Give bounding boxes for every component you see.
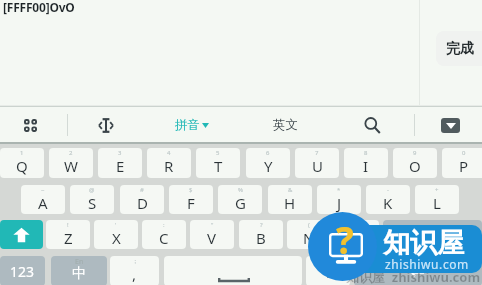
button[interactable]: 9 xyxy=(393,148,437,178)
staticText: + xyxy=(435,186,439,194)
staticText: 0 xyxy=(462,149,466,157)
staticText: 3 xyxy=(118,149,122,157)
button[interactable]: 3 xyxy=(98,148,142,178)
button[interactable]: ~ xyxy=(21,185,65,214)
staticText: 中 xyxy=(72,265,86,283)
staticText: 知识屋 xyxy=(383,226,464,260)
staticText: & xyxy=(288,186,293,194)
button[interactable]: $ xyxy=(169,185,213,214)
button[interactable]: 7 xyxy=(295,148,339,178)
button[interactable]: ? xyxy=(239,220,283,249)
staticText: 1 xyxy=(20,149,24,157)
button[interactable]: 4 xyxy=(147,148,191,178)
button[interactable]: ( xyxy=(287,220,331,249)
button[interactable]: ； xyxy=(110,256,159,285)
button[interactable]: ! xyxy=(46,220,90,249)
staticText: H xyxy=(284,193,296,213)
staticText: " xyxy=(211,221,214,229)
staticText: 7 xyxy=(315,149,319,157)
staticText: N xyxy=(303,228,315,248)
staticText: 5 xyxy=(216,149,220,157)
staticText: ? xyxy=(336,214,354,264)
staticText: X xyxy=(112,228,121,248)
staticText: : xyxy=(163,221,165,229)
button[interactable]: + xyxy=(415,185,459,214)
button[interactable]: Enter xyxy=(354,256,482,285)
staticText: % xyxy=(238,186,243,194)
staticText: 9 xyxy=(413,149,417,157)
staticText: F xyxy=(187,193,195,213)
button[interactable]: 2 xyxy=(49,148,93,178)
button[interactable]: 拼音 xyxy=(150,108,234,142)
staticText: Y xyxy=(264,156,273,176)
staticText: ? xyxy=(260,221,263,229)
staticText: ! xyxy=(67,221,69,229)
staticText: * xyxy=(337,186,341,194)
staticText: O xyxy=(409,156,421,176)
staticText: # xyxy=(140,186,144,194)
button[interactable]: Search xyxy=(336,108,408,142)
button[interactable]: Backspace xyxy=(383,220,482,249)
staticText: 英文 xyxy=(273,117,298,133)
button[interactable]: En xyxy=(51,256,107,285)
staticText: T xyxy=(214,156,223,176)
staticText: D xyxy=(137,193,148,213)
button[interactable]: Symbol panel xyxy=(0,108,60,142)
staticText: 4 xyxy=(167,149,171,157)
staticText: C xyxy=(159,228,169,248)
button[interactable]: - xyxy=(366,185,410,214)
staticText: ； xyxy=(132,257,138,265)
staticText: R xyxy=(164,156,174,176)
staticText: K xyxy=(383,193,393,213)
button[interactable]: : xyxy=(142,220,186,249)
staticText: V xyxy=(207,228,217,248)
button[interactable]: 英文 xyxy=(243,108,328,142)
button[interactable]: & xyxy=(268,185,312,214)
button[interactable]: Shift xyxy=(0,220,43,249)
staticText: ~ xyxy=(41,186,45,194)
staticText: M xyxy=(350,228,364,248)
staticText: 123 xyxy=(10,262,35,281)
button[interactable]: Move cursor xyxy=(68,108,144,142)
staticText: - xyxy=(387,186,389,194)
button[interactable]: ' xyxy=(94,220,138,249)
button[interactable]: 1 xyxy=(0,148,44,178)
staticText: G xyxy=(235,193,246,213)
button[interactable]: @ xyxy=(70,185,114,214)
staticText: 拼音 xyxy=(175,117,200,133)
button[interactable]: Voice input xyxy=(306,256,350,285)
button[interactable]: # xyxy=(120,185,164,214)
staticText: A xyxy=(38,193,48,213)
staticText: I xyxy=(363,156,369,176)
staticText: Z xyxy=(64,228,73,248)
staticText: W xyxy=(64,156,78,176)
button[interactable]: * xyxy=(317,185,361,214)
staticText: , xyxy=(132,264,137,284)
staticText: ( xyxy=(308,221,310,229)
staticText: 完成 xyxy=(446,40,474,58)
staticText: $ xyxy=(189,186,193,194)
button[interactable]: " xyxy=(190,220,234,249)
button[interactable]: 0 xyxy=(442,148,482,178)
button[interactable]: % xyxy=(218,185,262,214)
staticText: E xyxy=(116,156,125,176)
button[interactable]: 5 xyxy=(196,148,240,178)
staticText: U xyxy=(312,156,323,176)
button[interactable]: 123 xyxy=(0,256,45,285)
button[interactable]: Space xyxy=(164,256,302,285)
staticText: S xyxy=(88,193,97,213)
staticText: 2 xyxy=(69,149,73,157)
button[interactable]: 8 xyxy=(344,148,388,178)
button[interactable]: 6 xyxy=(246,148,290,178)
staticText: Q xyxy=(16,156,28,176)
staticText: L xyxy=(433,193,441,213)
staticText: B xyxy=(256,228,266,248)
staticText: En xyxy=(75,257,84,267)
staticText: @ xyxy=(89,186,95,194)
staticText: 8 xyxy=(364,149,368,157)
button[interactable]: 完成 xyxy=(436,31,482,66)
button[interactable]: ) xyxy=(335,220,379,249)
button[interactable]: Hide keyboard xyxy=(418,108,482,142)
staticText: 6 xyxy=(266,149,270,157)
